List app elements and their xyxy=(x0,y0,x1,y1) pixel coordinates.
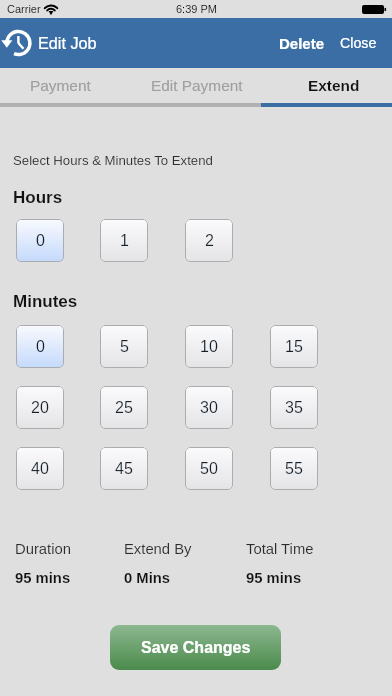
staticText: Select Hours & Minutes To Extend xyxy=(13,153,213,168)
staticText: Close xyxy=(340,35,377,51)
staticText: Extend By xyxy=(124,541,192,558)
staticText: 35 xyxy=(285,399,303,417)
staticText: 5 xyxy=(120,338,129,356)
button[interactable]: 45 xyxy=(100,447,148,490)
button[interactable]: 2 xyxy=(185,219,233,262)
staticText: 6:39 PM xyxy=(176,3,217,15)
staticText: 0 xyxy=(36,232,45,250)
staticText: 1 xyxy=(120,232,129,250)
staticText: Duration xyxy=(15,541,71,558)
staticText: Carrier xyxy=(7,3,41,15)
button[interactable]: 40 xyxy=(16,447,64,490)
button[interactable]: 1 xyxy=(100,219,148,262)
button[interactable]: 30 xyxy=(185,386,233,429)
staticText: 15 xyxy=(285,338,303,356)
button[interactable]: Extend xyxy=(268,68,392,103)
button[interactable]: Save Changes xyxy=(110,625,281,670)
staticText: Delete xyxy=(279,35,325,52)
staticText: 50 xyxy=(200,460,218,478)
staticText: 25 xyxy=(115,399,133,417)
staticText: Edit Payment xyxy=(151,77,243,94)
button[interactable]: Close xyxy=(337,24,380,62)
staticText: Hours xyxy=(13,188,63,207)
staticText: 2 xyxy=(205,232,214,250)
staticText: 20 xyxy=(31,399,49,417)
staticText: Payment xyxy=(30,77,91,94)
button[interactable]: 10 xyxy=(185,325,233,368)
staticText: 45 xyxy=(115,460,133,478)
staticText: 95 mins xyxy=(246,570,302,587)
button[interactable]: 0 xyxy=(16,325,64,368)
button[interactable]: 50 xyxy=(185,447,233,490)
staticText: 40 xyxy=(31,460,49,478)
staticText: Extend xyxy=(308,77,360,94)
staticText: Total Time xyxy=(246,541,314,558)
button[interactable]: Edit Payment xyxy=(131,68,262,103)
staticText: 95 mins xyxy=(15,570,71,587)
button[interactable]: Delete xyxy=(274,24,330,63)
staticText: 10 xyxy=(200,338,218,356)
staticText: Save Changes xyxy=(141,639,251,657)
staticText: Edit Job xyxy=(38,34,97,52)
staticText: 55 xyxy=(285,460,303,478)
button[interactable]: 55 xyxy=(270,447,318,490)
other: History xyxy=(2,28,32,58)
button[interactable]: History xyxy=(2,18,97,68)
button[interactable]: 25 xyxy=(100,386,148,429)
staticText: 0 Mins xyxy=(124,570,171,587)
staticText: 30 xyxy=(200,399,218,417)
button[interactable]: 20 xyxy=(16,386,64,429)
button[interactable]: 0 xyxy=(16,219,64,262)
staticText: 0 xyxy=(36,338,45,356)
button[interactable]: 15 xyxy=(270,325,318,368)
button[interactable]: 35 xyxy=(270,386,318,429)
button[interactable]: 5 xyxy=(100,325,148,368)
button[interactable]: Payment xyxy=(0,68,121,103)
staticText: Minutes xyxy=(13,292,78,311)
